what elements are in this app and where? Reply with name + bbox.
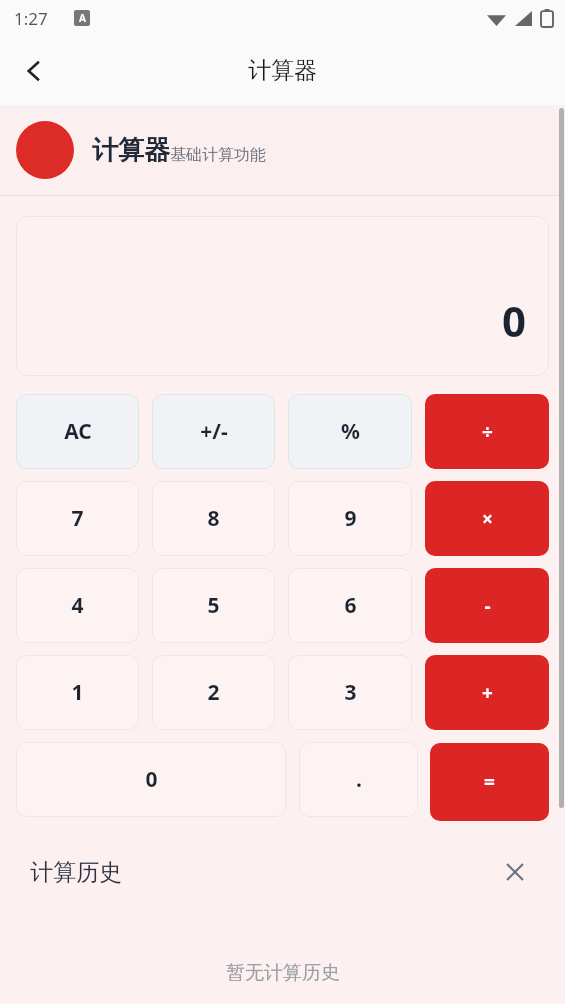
staticText: 计算器 <box>248 56 317 85</box>
staticText: 2 <box>207 678 220 707</box>
staticText: 5 <box>207 591 220 620</box>
staticText: AC <box>64 417 92 446</box>
staticText: 0 <box>502 292 527 349</box>
button[interactable]: ÷ <box>425 394 549 469</box>
button[interactable]: 7 <box>16 481 139 556</box>
button[interactable]: 2 <box>152 655 275 730</box>
button[interactable]: + <box>425 655 549 730</box>
staticText: % <box>341 417 360 446</box>
staticText: 8 <box>207 504 220 533</box>
button[interactable]: +/- <box>152 394 275 469</box>
staticText: A <box>79 11 86 25</box>
button[interactable]: 6 <box>288 568 412 643</box>
staticText: + <box>482 680 493 706</box>
staticText: 0 <box>145 765 158 794</box>
staticText: 6 <box>344 591 357 620</box>
staticText: - <box>484 593 491 619</box>
button[interactable]: 8 <box>152 481 275 556</box>
button[interactable]: 4 <box>16 568 139 643</box>
button[interactable]: % <box>288 394 412 469</box>
staticText: 计算器 <box>92 134 170 167</box>
button[interactable]: 0 <box>16 742 286 817</box>
button[interactable]: AC <box>16 394 139 469</box>
staticText: 1:27 <box>14 7 48 30</box>
staticText: 9 <box>344 504 357 533</box>
staticText: 计算历史 <box>30 858 122 887</box>
button[interactable]: Back <box>12 49 56 93</box>
button[interactable]: 5 <box>152 568 275 643</box>
button[interactable]: 3 <box>288 655 412 730</box>
staticText: ÷ <box>482 419 493 445</box>
button[interactable]: Close history <box>495 852 535 892</box>
staticText: × <box>482 506 493 532</box>
button[interactable]: × <box>425 481 549 556</box>
staticText: 暂无计算历史 <box>226 961 340 985</box>
staticText: = <box>484 769 495 795</box>
button[interactable]: 1 <box>16 655 139 730</box>
button[interactable]: = <box>430 743 549 821</box>
staticText: 1 <box>71 678 84 707</box>
staticText: 4 <box>71 591 84 620</box>
staticText: +/- <box>200 417 228 446</box>
button[interactable]: . <box>299 742 418 817</box>
button[interactable]: 9 <box>288 481 412 556</box>
staticText: 7 <box>71 504 84 533</box>
staticText: 基础计算功能 <box>170 145 266 165</box>
staticText: . <box>356 765 362 794</box>
staticText: 3 <box>344 678 357 707</box>
button[interactable]: - <box>425 568 549 643</box>
